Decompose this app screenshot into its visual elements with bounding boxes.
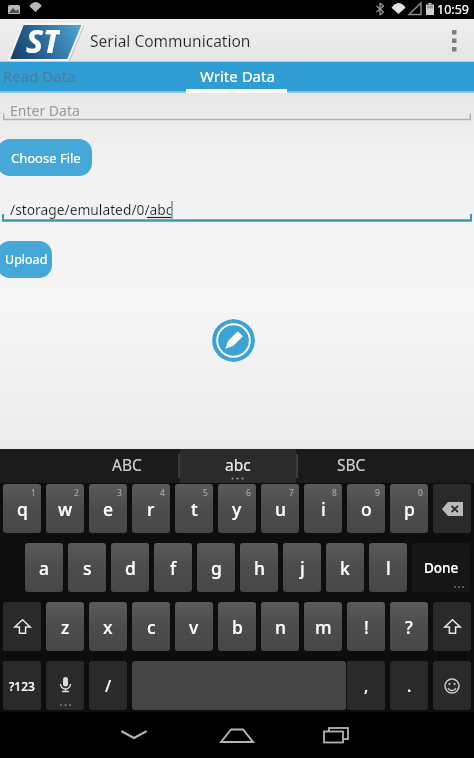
button[interactable]: d (111, 543, 149, 592)
button[interactable]: w (46, 484, 84, 533)
staticText: . (407, 675, 412, 697)
staticText: 2 (74, 487, 79, 499)
staticText: ! (364, 615, 369, 639)
button[interactable]: ? (390, 602, 428, 651)
button[interactable]: Write Data (200, 66, 275, 86)
button[interactable]: z (46, 602, 84, 651)
staticText: i (321, 497, 326, 521)
button[interactable] (110, 712, 158, 758)
button[interactable] (213, 712, 261, 758)
button[interactable]: x (89, 602, 127, 651)
staticText: ST (26, 19, 60, 62)
staticText: j (300, 556, 305, 580)
staticText: p (404, 497, 415, 521)
staticText: 10:59 (437, 1, 469, 18)
button[interactable] (433, 602, 471, 651)
button[interactable]: s (68, 543, 106, 592)
staticText: 0 (418, 487, 423, 499)
staticText: Read Data (3, 66, 76, 86)
staticText: ABC (112, 454, 142, 475)
button[interactable]: g (197, 543, 235, 592)
staticText: q (17, 497, 28, 521)
staticText: Done (424, 559, 459, 577)
button[interactable]: t (175, 484, 213, 533)
button[interactable]: Choose File (0, 139, 92, 176)
button[interactable]: ABC (76, 449, 178, 480)
button[interactable]: k (326, 543, 364, 592)
staticText: d (125, 556, 136, 580)
staticText: Serial Communication (90, 30, 251, 51)
button[interactable]: ! (347, 602, 385, 651)
button[interactable]: c (132, 602, 170, 651)
button[interactable] (3, 602, 41, 651)
button[interactable]: SBC (296, 449, 406, 480)
button[interactable] (433, 484, 471, 533)
staticText: v (189, 615, 199, 639)
staticText: k (340, 556, 350, 580)
button[interactable] (433, 661, 471, 710)
staticText: a (39, 556, 50, 580)
button[interactable]: m (304, 602, 342, 651)
staticText: Enter Data (10, 101, 80, 120)
button[interactable]: r (132, 484, 170, 533)
button[interactable]: ?123 (3, 661, 41, 710)
button[interactable]: b (218, 602, 256, 651)
button[interactable]: f (154, 543, 192, 592)
staticText: r (147, 497, 155, 521)
staticText: 7 (289, 487, 294, 499)
button[interactable]: h (240, 543, 278, 592)
staticText: Write Data (200, 66, 275, 86)
button[interactable]: Enter Data (0, 93, 474, 127)
button[interactable]: l (369, 543, 407, 592)
staticText: c (147, 615, 156, 639)
staticText: 6 (246, 487, 251, 499)
button[interactable]: e (89, 484, 127, 533)
staticText: 8 (332, 487, 337, 499)
button[interactable] (46, 661, 84, 710)
button[interactable]: / (89, 661, 127, 710)
staticText: ?123 (9, 678, 35, 694)
button[interactable]: /storage/emulated/0/abc (0, 193, 474, 227)
staticText: y (232, 497, 242, 521)
button[interactable]: y (218, 484, 256, 533)
staticText: l (386, 556, 391, 580)
staticText: m (315, 615, 332, 639)
button[interactable]: q (3, 484, 41, 533)
staticText: Upload (5, 251, 48, 268)
button[interactable]: p (390, 484, 428, 533)
button[interactable]: Upload (0, 241, 52, 278)
button[interactable]: a (25, 543, 63, 592)
staticText: u (275, 497, 286, 521)
staticText: f (170, 556, 177, 580)
staticText: SBC (337, 454, 366, 475)
staticText: e (103, 497, 114, 521)
button[interactable]: j (283, 543, 321, 592)
staticText: t (191, 497, 198, 521)
button[interactable] (434, 19, 474, 62)
staticText: /storage/emulated/0/abc (10, 200, 173, 219)
staticText: 5 (203, 487, 208, 499)
staticText: o (361, 497, 372, 521)
button[interactable]: Done (412, 543, 470, 592)
button[interactable]: Read Data (3, 66, 76, 86)
staticText: 1 (31, 487, 36, 499)
button[interactable]: n (261, 602, 299, 651)
staticText: x (103, 615, 113, 639)
button[interactable]: u (261, 484, 299, 533)
button[interactable] (212, 319, 255, 362)
button[interactable]: , (347, 661, 385, 710)
staticText: g (211, 556, 222, 580)
button[interactable]: . (390, 661, 428, 710)
button[interactable] (312, 712, 360, 758)
staticText: n (275, 615, 286, 639)
button[interactable]: i (304, 484, 342, 533)
staticText: Choose File (11, 149, 81, 167)
staticText: 9 (375, 487, 380, 499)
staticText: b (232, 615, 243, 639)
button[interactable]: v (175, 602, 213, 651)
staticText: w (58, 497, 73, 521)
staticText: s (83, 556, 92, 580)
button[interactable]: abc (180, 449, 296, 480)
button[interactable]: o (347, 484, 385, 533)
